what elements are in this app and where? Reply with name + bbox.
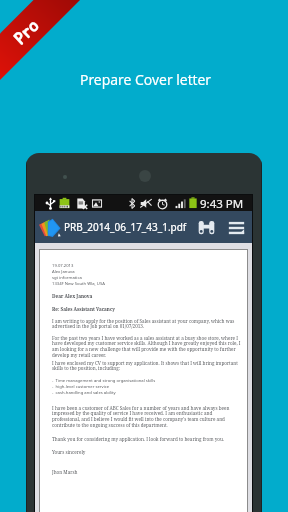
button[interactable]: Menu <box>223 214 249 240</box>
staticText: - high-level customer service <box>52 384 110 390</box>
staticText: Re: Sales Assistant Vacancy <box>52 306 116 312</box>
staticText: Yours sincerely <box>52 449 86 455</box>
staticText: Pro <box>8 14 44 50</box>
staticText: I have enclosed my CV to support my appl… <box>52 360 241 372</box>
staticText: - cash-handling and sales ability <box>52 390 116 396</box>
staticText: Prepare Cover letter <box>80 70 212 89</box>
staticText: For the past two years I have worked as … <box>52 335 241 359</box>
staticText: 9:43 PM <box>200 196 244 212</box>
staticText: PRB_2014_06_17_43_1.pdf <box>64 220 187 234</box>
staticText: - Time management and strong organisatio… <box>52 378 156 384</box>
staticText: I am writing to apply for the position o… <box>52 318 241 330</box>
staticText: I have been a customer of ABC Sales for … <box>52 405 241 429</box>
staticText: Alex Januva <box>52 269 75 275</box>
staticText: 1334F New South Wla, USA <box>52 281 105 287</box>
staticText: 19.07.2013 <box>52 263 74 269</box>
staticText: Thank you for considering my application… <box>52 436 224 442</box>
staticText: Dear Alex Janova <box>52 293 93 299</box>
button[interactable]: Search <box>193 214 219 240</box>
staticText: Jhon Marsh <box>52 469 78 475</box>
staticText: sgt informatica <box>52 275 82 281</box>
